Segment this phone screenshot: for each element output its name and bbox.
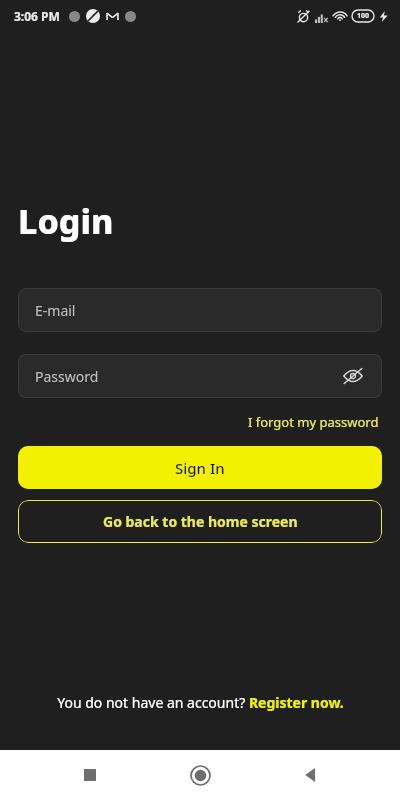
button[interactable]: You do not have an account? Register now… [0, 687, 400, 718]
staticText: Sign In [175, 458, 225, 478]
staticText: Go back to the home screen [103, 512, 298, 531]
button[interactable]: Go back to the home screen [18, 500, 382, 543]
button[interactable]: I forgot my password [246, 410, 381, 434]
button[interactable]: Recents [70, 755, 110, 795]
button[interactable]: E-mail [18, 288, 382, 332]
staticText: E-mail [35, 301, 76, 320]
button[interactable]: Sign In [18, 446, 382, 489]
staticText: 3:06 PM [14, 8, 60, 24]
staticText: 100 [357, 11, 370, 21]
button[interactable]: Back [290, 755, 330, 795]
button[interactable]: Show password [340, 363, 366, 389]
button[interactable]: Home [180, 755, 220, 795]
staticText: Login [18, 198, 114, 244]
staticText: Password [35, 367, 99, 386]
button[interactable]: Password [18, 354, 382, 398]
staticText: I forgot my password [248, 413, 379, 431]
staticText: You do not have an account? Register now… [57, 693, 344, 712]
